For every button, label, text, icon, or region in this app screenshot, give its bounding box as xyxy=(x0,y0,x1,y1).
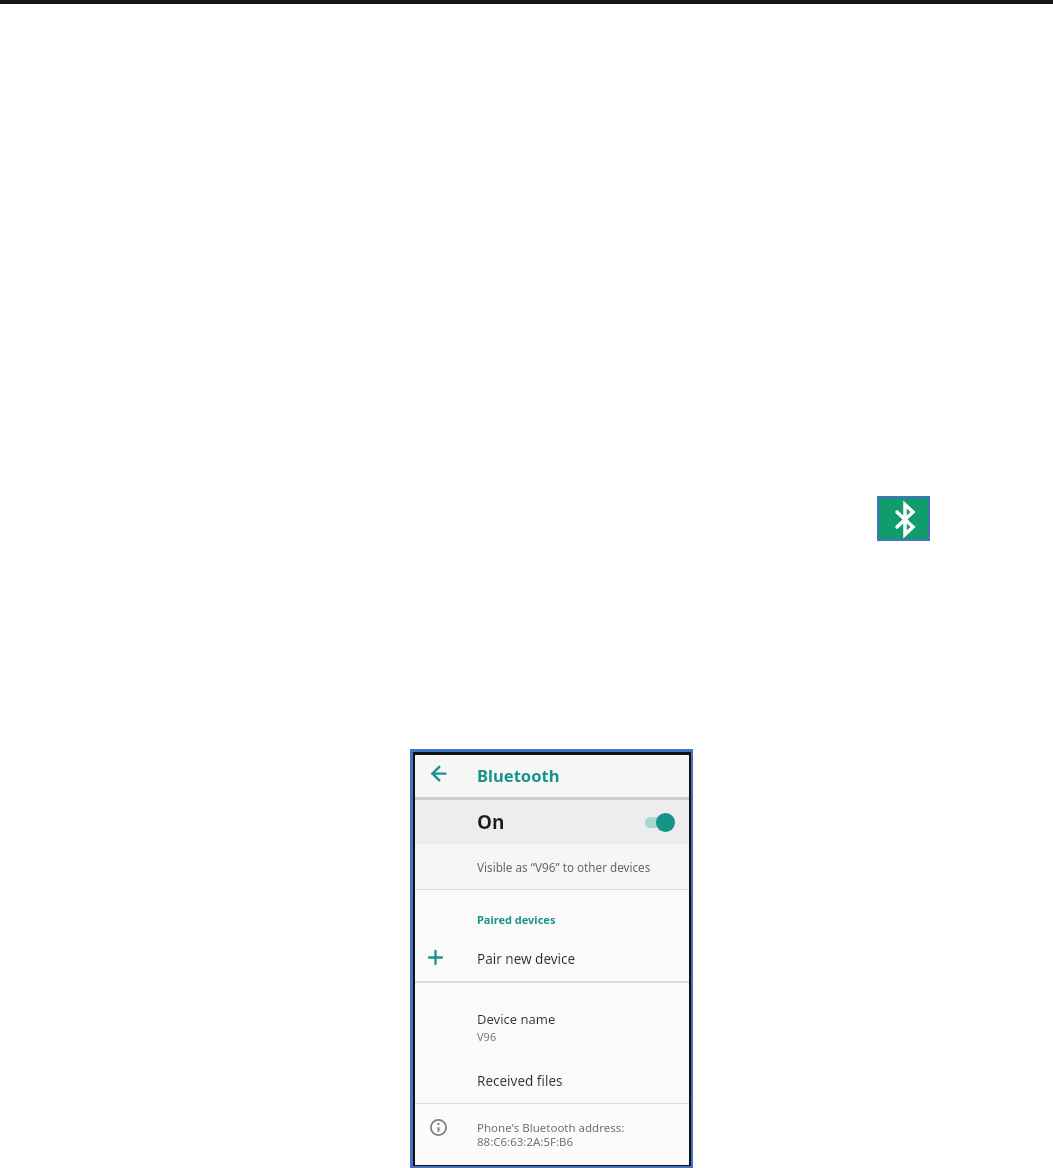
staticText: Visible as “V96” to other devices xyxy=(477,859,651,875)
button[interactable]: On xyxy=(415,800,689,845)
button[interactable]: Device name xyxy=(415,1005,689,1047)
staticText: Phone's Bluetooth address: xyxy=(477,1120,625,1136)
button[interactable] xyxy=(877,496,930,541)
staticText: Received files xyxy=(477,1072,563,1090)
staticText: Pair new device xyxy=(477,950,576,968)
button[interactable] xyxy=(425,763,455,787)
staticText: 88:C6:63:2A:5F:B6 xyxy=(477,1134,574,1150)
staticText: Device name xyxy=(477,1010,556,1028)
button[interactable]: Visible as “V96” to other devices xyxy=(415,844,689,889)
staticText: Bluetooth xyxy=(477,764,560,784)
button[interactable]: Pair new device xyxy=(415,935,689,979)
button[interactable]: Received files xyxy=(415,1067,689,1097)
staticText: Paired devices xyxy=(477,912,556,927)
staticText: On xyxy=(477,809,505,829)
staticText: V96 xyxy=(477,1029,497,1044)
